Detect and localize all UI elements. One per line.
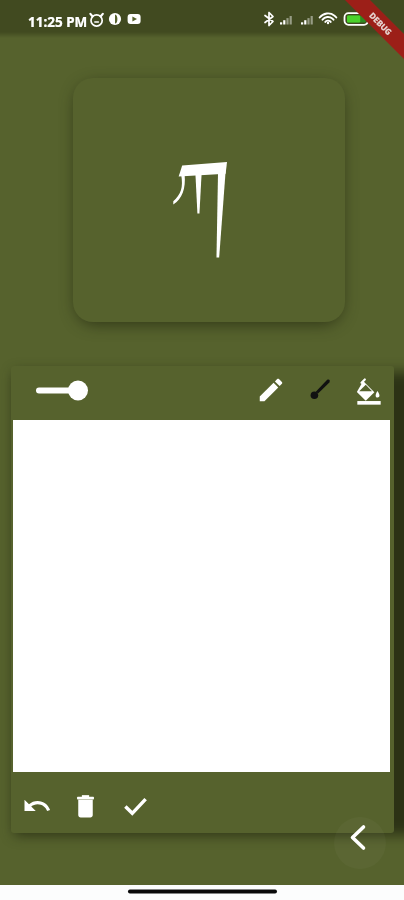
staticText: 11:25 PM <box>28 13 88 31</box>
button[interactable]: Delete <box>67 788 103 824</box>
button[interactable]: Brush <box>303 371 337 405</box>
button[interactable]: Done <box>117 787 153 823</box>
button[interactable]: Undo <box>19 788 55 824</box>
button[interactable]: Pencil <box>254 373 288 407</box>
button[interactable]: Preview character <box>73 78 345 322</box>
button[interactable]: Fill color <box>352 374 386 408</box>
button[interactable]: Stroke width <box>28 373 102 407</box>
staticText: DEBUG <box>367 10 395 37</box>
